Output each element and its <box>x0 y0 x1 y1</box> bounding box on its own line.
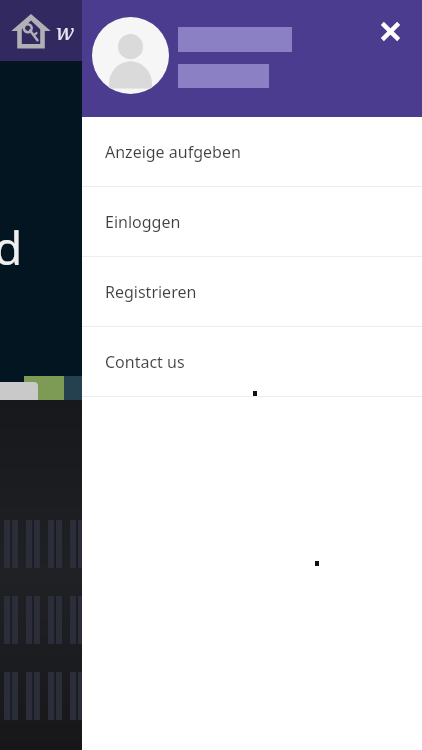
button[interactable]: Anzeige aufgeben <box>82 117 422 186</box>
button[interactable]: Profile picture <box>92 17 169 94</box>
staticText: w <box>56 16 75 46</box>
staticText: Anzeige aufgeben <box>105 141 241 163</box>
button[interactable]: Registrieren <box>82 257 422 326</box>
staticText: Registrieren <box>105 281 197 303</box>
staticText: d <box>0 216 23 279</box>
button[interactable]: Search <box>0 382 38 444</box>
staticText: Contact us <box>105 351 185 373</box>
button[interactable]: Contact us <box>82 327 422 396</box>
staticText: Einloggen <box>105 211 181 233</box>
button[interactable]: Close <box>370 11 410 51</box>
button[interactable]: Einloggen <box>82 187 422 256</box>
